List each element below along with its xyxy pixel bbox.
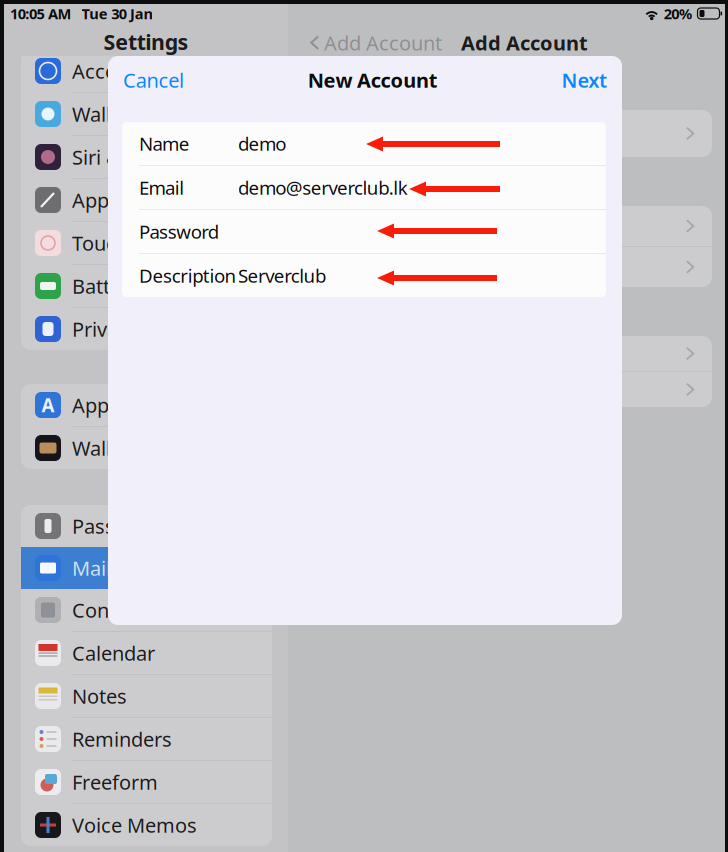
- staticText: Contacts: [72, 597, 154, 623]
- staticText: Voice Memos: [72, 812, 197, 838]
- staticText: Password: [139, 219, 219, 244]
- staticText: Next: [562, 67, 607, 93]
- staticText: App Store: [72, 392, 163, 418]
- staticText: Add Account: [461, 29, 588, 56]
- button[interactable]: Calendar: [21, 632, 272, 674]
- staticText: Freeform: [72, 769, 158, 795]
- staticText: Notes: [72, 683, 127, 709]
- button[interactable]: Privacy & Security: [21, 308, 272, 350]
- button[interactable]: Siri & Search: [21, 136, 272, 178]
- staticText: 10:05 AM: [10, 4, 72, 23]
- staticText: Cancel: [123, 67, 184, 93]
- button[interactable]: Mail: [21, 547, 272, 589]
- button[interactable]: Apple Pencil: [21, 179, 272, 221]
- staticText: Tue 30 Jan: [82, 4, 153, 23]
- staticText: Siri & Search: [72, 144, 189, 170]
- staticText: Serverclub: [238, 263, 326, 288]
- staticText: Mail: [72, 555, 111, 581]
- staticText: Battery: [72, 273, 139, 299]
- staticText: demo: [238, 131, 286, 156]
- button[interactable]: A: [21, 384, 272, 426]
- staticText: Privacy & Security: [72, 316, 237, 342]
- staticText: Accessibility: [72, 58, 185, 84]
- staticText: A: [41, 393, 54, 417]
- staticText: Calendar: [72, 640, 155, 666]
- staticText: Description: [139, 263, 236, 288]
- button[interactable]: Wallet & Apple Pay: [21, 427, 272, 469]
- button[interactable]: Touch ID & Passcode: [21, 222, 272, 264]
- staticText: Apple Pencil: [72, 187, 185, 213]
- staticText: Touch ID & Passcode: [72, 230, 264, 256]
- staticText: demo@serverclub.lk: [238, 175, 408, 200]
- staticText: 20%: [664, 4, 692, 23]
- staticText: Add Account: [324, 29, 442, 56]
- button[interactable]: Contacts: [21, 589, 272, 631]
- button[interactable]: Add Account: [310, 29, 442, 56]
- button[interactable]: Voice Memos: [21, 804, 272, 846]
- staticText: Email: [139, 175, 184, 200]
- staticText: Wallet & Apple Pay: [72, 435, 245, 461]
- staticText: Name: [139, 131, 190, 156]
- button[interactable]: Freeform: [21, 761, 272, 803]
- button[interactable]: Passwords: [21, 505, 272, 547]
- button[interactable]: Battery: [21, 265, 272, 307]
- button[interactable]: Notes: [21, 675, 272, 717]
- staticText: Settings: [103, 28, 188, 56]
- button[interactable]: Next: [562, 67, 607, 93]
- button[interactable]: Cancel: [123, 67, 184, 93]
- staticText: Wallpaper: [72, 101, 165, 127]
- staticText: Reminders: [72, 726, 172, 752]
- button[interactable]: Wallpaper: [21, 93, 272, 135]
- staticText: New Account: [308, 67, 438, 93]
- button[interactable]: Reminders: [21, 718, 272, 760]
- staticText: Passwords: [72, 513, 173, 539]
- button[interactable]: Accessibility: [21, 50, 272, 92]
